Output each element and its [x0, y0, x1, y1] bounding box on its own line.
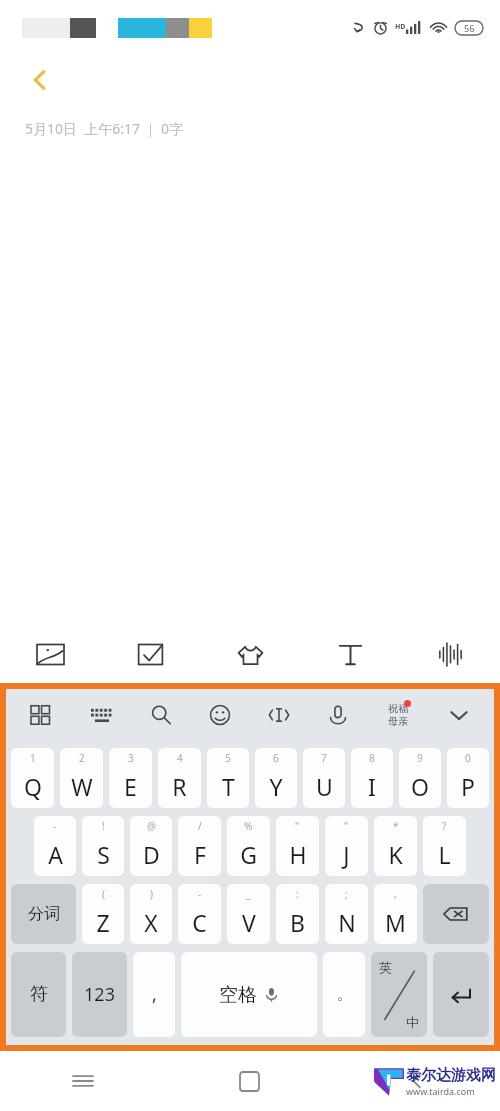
- button[interactable]: Apps: [12, 689, 72, 741]
- button[interactable]: 123: [72, 952, 127, 1037]
- staticText: 5: [225, 751, 231, 765]
- button[interactable]: -: [34, 816, 76, 876]
- button[interactable]: Hide keyboard: [429, 689, 488, 741]
- button[interactable]: _: [227, 884, 270, 944]
- button[interactable]: 分词: [11, 884, 76, 944]
- button[interactable]: 。: [323, 952, 365, 1037]
- staticText: C: [192, 907, 207, 938]
- staticText: /: [198, 819, 202, 833]
- staticText: P: [461, 771, 475, 802]
- button[interactable]: 6: [255, 748, 297, 808]
- button[interactable]: :: [276, 884, 319, 944]
- staticText: 0: [465, 751, 471, 765]
- staticText: 9: [417, 751, 423, 765]
- button[interactable]: Cursor: [249, 689, 308, 741]
- button[interactable]: Checklist: [100, 625, 200, 683]
- staticText: 5月10日 上午6:17 ｜ 0字: [25, 119, 184, 138]
- button[interactable]: ,: [374, 884, 417, 944]
- staticText: V: [242, 907, 256, 938]
- staticText: 123: [84, 982, 115, 1007]
- staticText: Z: [96, 907, 110, 938]
- staticText: ?: [442, 819, 447, 833]
- staticText: 56: [464, 22, 475, 34]
- button[interactable]: Back: [14, 55, 66, 105]
- button[interactable]: 7: [303, 748, 345, 808]
- button[interactable]: ,: [133, 952, 175, 1037]
- staticText: B: [290, 907, 305, 938]
- staticText: T: [222, 771, 235, 802]
- button[interactable]: 1: [11, 748, 54, 808]
- button[interactable]: /: [178, 816, 221, 876]
- button[interactable]: 9: [399, 748, 441, 808]
- button[interactable]: 符: [11, 952, 66, 1037]
- staticText: 4: [177, 751, 183, 765]
- staticText: ): [150, 887, 153, 901]
- staticText: -: [198, 887, 202, 901]
- staticText: H: [289, 839, 307, 870]
- staticText: _: [246, 887, 251, 901]
- button[interactable]: 8: [351, 748, 393, 808]
- button[interactable]: Emoji: [190, 689, 249, 741]
- staticText: *: [393, 819, 399, 833]
- button[interactable]: 空格: [181, 952, 317, 1037]
- button[interactable]: *: [374, 816, 417, 876]
- staticText: 8: [369, 751, 375, 765]
- staticText: ": [344, 819, 349, 833]
- staticText: J: [343, 839, 350, 870]
- button[interactable]: Backspace: [423, 884, 489, 944]
- button[interactable]: ): [130, 884, 172, 944]
- button[interactable]: 0: [447, 748, 489, 808]
- staticText: X: [144, 907, 158, 938]
- staticText: HD: [395, 22, 406, 32]
- button[interactable]: @: [130, 816, 172, 876]
- button[interactable]: Search: [131, 689, 190, 741]
- button[interactable]: ;: [325, 884, 368, 944]
- button[interactable]: ": [325, 816, 368, 876]
- staticText: 。: [337, 985, 352, 1004]
- staticText: N: [338, 907, 356, 938]
- button[interactable]: !: [82, 816, 124, 876]
- button[interactable]: Text format: [300, 625, 400, 683]
- staticText: @: [147, 819, 156, 833]
- button[interactable]: Switch language: [371, 952, 427, 1037]
- staticText: ,: [394, 887, 397, 901]
- button[interactable]: Voice: [400, 625, 500, 683]
- staticText: D: [143, 839, 160, 870]
- staticText: (: [102, 887, 105, 901]
- staticText: 符: [30, 983, 48, 1006]
- button[interactable]: (: [82, 884, 124, 944]
- staticText: W: [71, 771, 93, 802]
- button[interactable]: 祝福: [367, 689, 429, 741]
- button[interactable]: Template: [200, 625, 300, 683]
- button[interactable]: -: [178, 884, 221, 944]
- button[interactable]: Keyboard layout: [72, 689, 131, 741]
- staticText: 祝福: [388, 702, 408, 715]
- button[interactable]: 4: [158, 748, 201, 808]
- button[interactable]: Home: [166, 1051, 333, 1111]
- staticText: U: [316, 771, 333, 802]
- staticText: Q: [24, 771, 42, 802]
- staticText: !: [102, 819, 105, 833]
- staticText: K: [388, 839, 403, 870]
- button[interactable]: Recents: [0, 1051, 166, 1111]
- staticText: 空格: [219, 983, 257, 1007]
- staticText: Y: [269, 771, 283, 802]
- button[interactable]: ": [276, 816, 319, 876]
- staticText: M: [385, 907, 406, 938]
- button[interactable]: 2: [60, 748, 103, 808]
- staticText: 2: [79, 751, 85, 765]
- button[interactable]: ?: [423, 816, 466, 876]
- button[interactable]: Back: [333, 1051, 500, 1111]
- staticText: A: [48, 839, 63, 870]
- button[interactable]: Voice input: [308, 689, 367, 741]
- staticText: 母亲: [388, 715, 408, 728]
- button[interactable]: 3: [109, 748, 152, 808]
- staticText: E: [124, 771, 137, 802]
- button[interactable]: %: [227, 816, 270, 876]
- staticText: S: [97, 839, 110, 870]
- staticText: 英: [379, 959, 392, 975]
- button[interactable]: Insert image: [0, 625, 100, 683]
- staticText: 6: [273, 751, 279, 765]
- button[interactable]: 5: [207, 748, 249, 808]
- button[interactable]: Enter: [433, 952, 489, 1037]
